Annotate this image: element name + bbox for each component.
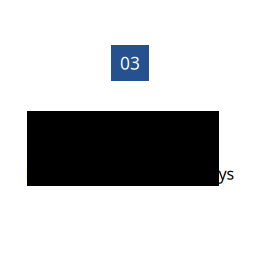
staticText: Every 2 weeks on weekdays <box>25 163 234 184</box>
staticText: 03 <box>120 51 140 74</box>
button[interactable]: 03 <box>111 45 149 81</box>
